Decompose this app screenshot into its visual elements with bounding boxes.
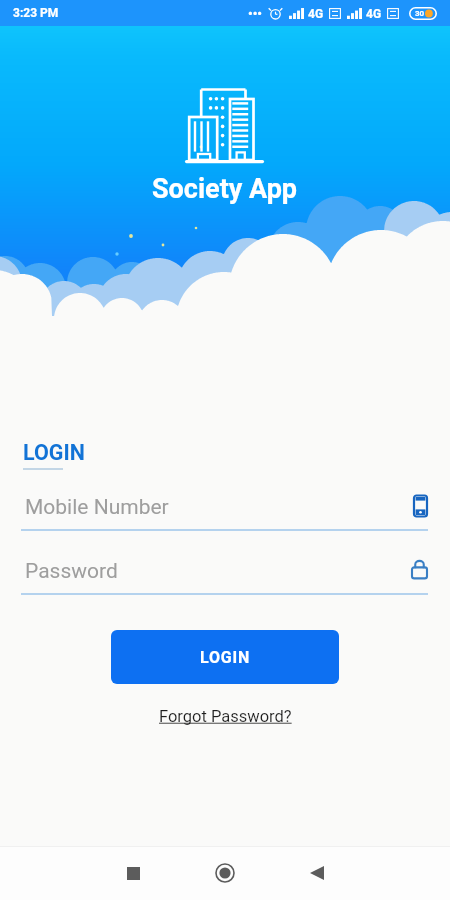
button[interactable]: Forgot Password? — [159, 707, 292, 726]
staticText: Society App — [152, 173, 298, 205]
button[interactable]: Back — [293, 849, 341, 897]
button[interactable]: Password — [21, 551, 428, 597]
staticText: Mobile Number — [25, 495, 169, 520]
staticText: 30 — [415, 9, 425, 18]
other: Password — [411, 559, 428, 579]
staticText: Password — [25, 559, 118, 584]
staticText: LOGIN — [23, 440, 85, 465]
button[interactable]: Home — [201, 849, 249, 897]
button[interactable]: LOGIN — [23, 440, 85, 470]
other: Mobile number — [413, 495, 428, 517]
button[interactable]: LOGIN — [111, 630, 339, 684]
staticText: 4G — [308, 7, 324, 21]
staticText: ••• — [248, 6, 263, 21]
staticText: 4G — [366, 7, 382, 21]
staticText: 3:23 PM — [13, 6, 59, 20]
button[interactable]: Mobile Number — [21, 487, 428, 533]
staticText: LOGIN — [200, 648, 251, 667]
button[interactable]: Recent apps — [109, 849, 157, 897]
